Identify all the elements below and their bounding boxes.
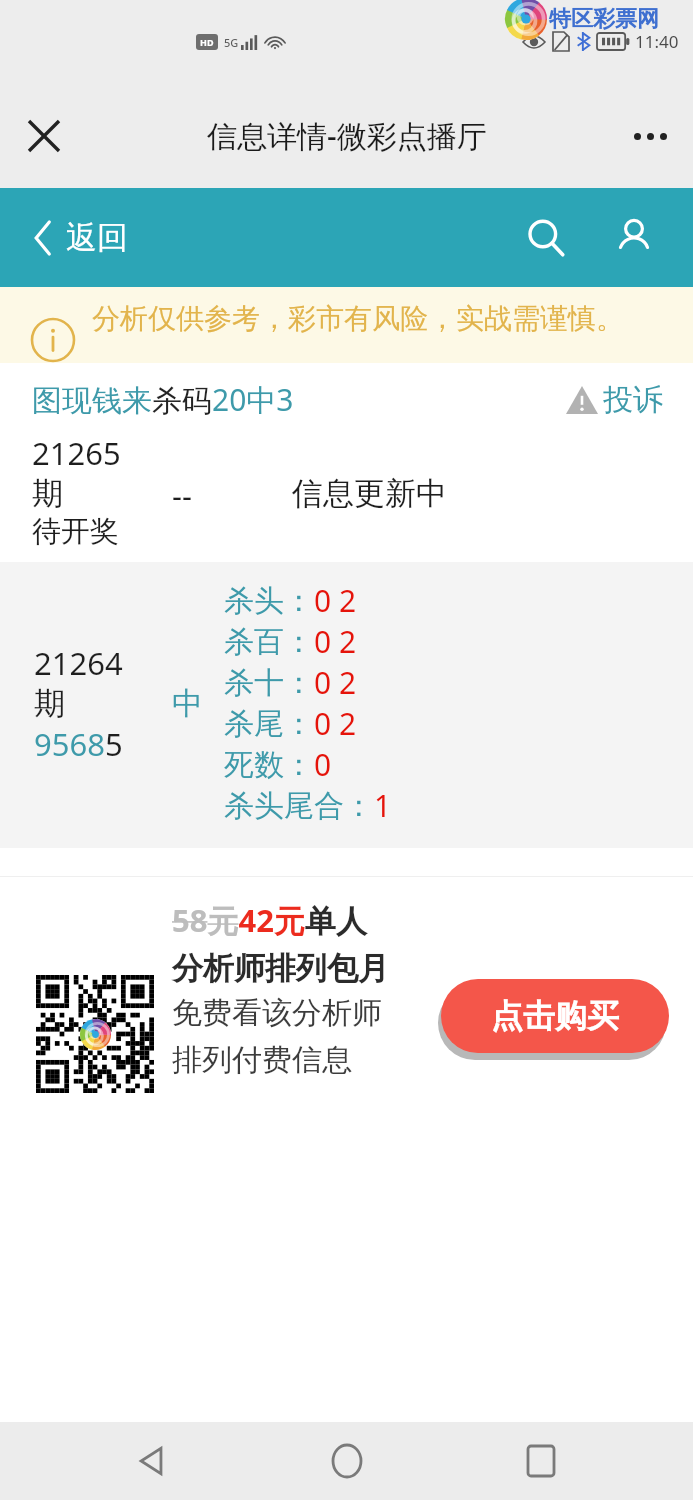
staticText: 信息更新中 <box>292 474 447 513</box>
staticText: 5G <box>224 35 239 50</box>
staticText: 杀头： <box>224 582 314 620</box>
staticText: 点击购买 <box>491 996 619 1036</box>
staticText: 待开奖 <box>32 513 119 550</box>
button[interactable]: 返回 <box>34 218 128 257</box>
button[interactable]: More options <box>621 107 679 165</box>
staticText: 杀尾： <box>224 705 314 743</box>
staticText: 期 <box>34 684 65 723</box>
staticText: 1 <box>374 785 392 826</box>
staticText: 0 2 <box>314 662 357 703</box>
staticText: 期 <box>32 474 63 513</box>
button[interactable]: Search <box>513 205 579 271</box>
button[interactable]: Account <box>601 205 667 271</box>
button[interactable]: Home <box>304 1422 390 1500</box>
staticText: 0 2 <box>314 621 357 662</box>
staticText: 杀头尾合： <box>224 787 374 825</box>
button[interactable]: Back <box>109 1422 195 1500</box>
staticText: 95685 <box>34 723 123 765</box>
button[interactable]: 图现钱来杀码20中3 <box>32 379 294 420</box>
staticText: HD <box>200 36 214 48</box>
staticText: 杀十： <box>224 664 314 702</box>
button[interactable]: QR code <box>36 975 154 1093</box>
button[interactable]: Close <box>14 106 74 166</box>
staticText: 返回 <box>66 218 128 257</box>
staticText: 死数： <box>224 746 314 784</box>
button[interactable]: 投诉 <box>565 381 663 419</box>
staticText: 分析仅供参考，彩市有风险，实战需谨慎。 <box>92 301 624 336</box>
staticText: 58元42元单人分析师排列包月 <box>172 899 392 988</box>
button[interactable]: Recent apps <box>498 1422 584 1500</box>
staticText: 0 2 <box>314 580 357 621</box>
staticText: 免费看该分析师排列付费信息 <box>172 994 392 1079</box>
staticText: 21264 <box>34 642 123 684</box>
staticText: 中 <box>172 684 203 723</box>
button[interactable]: 点击购买 <box>441 979 669 1053</box>
staticText: 21265 <box>32 432 121 474</box>
button[interactable]: 21264 <box>0 580 693 826</box>
staticText: 特区彩票网 <box>549 5 659 33</box>
staticText: 信息详情-微彩点播厅 <box>207 115 487 156</box>
staticText: 11:40 <box>635 30 679 53</box>
staticText: 0 2 <box>314 703 357 744</box>
staticText: -- <box>172 474 192 516</box>
staticText: 杀百： <box>224 623 314 661</box>
staticText: 投诉 <box>603 381 663 419</box>
staticText: 0 <box>314 744 332 785</box>
